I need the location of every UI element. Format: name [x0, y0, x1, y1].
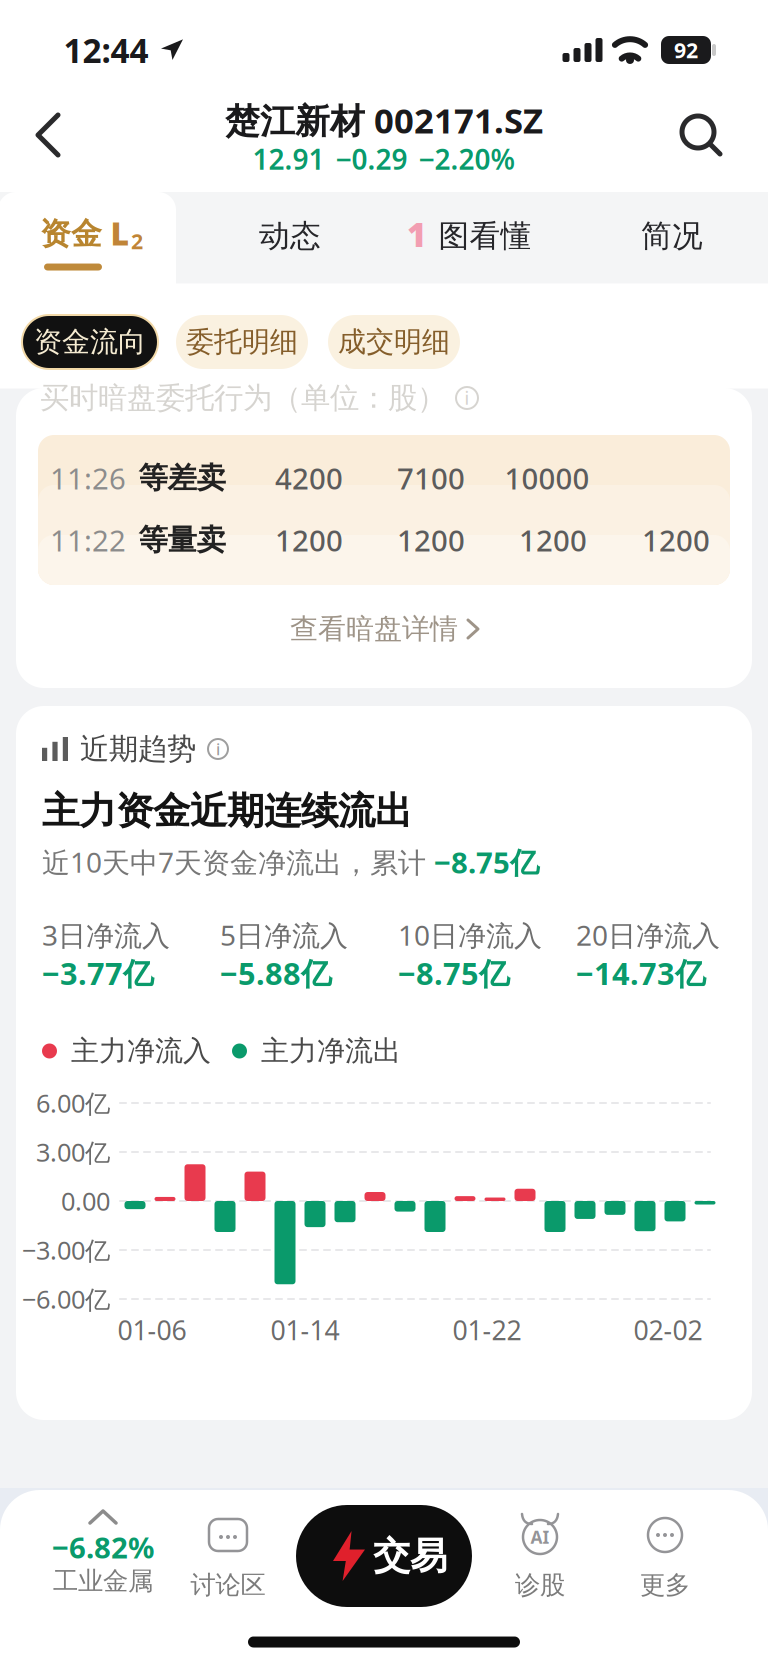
- staticText: 主力净流出: [261, 1034, 401, 1068]
- button[interactable]: Search: [682, 116, 722, 156]
- staticText: 01-14: [270, 1312, 339, 1348]
- button[interactable]: 资金: [0, 192, 178, 284]
- staticText: L: [110, 212, 129, 254]
- staticText: 主力资金近期连续流出: [42, 788, 412, 834]
- staticText: 02-02: [633, 1312, 702, 1348]
- staticText: 更多: [640, 1569, 690, 1600]
- staticText: 等量卖: [138, 522, 225, 558]
- staticText: 诊股: [515, 1569, 565, 1600]
- staticText: 4200: [275, 458, 343, 497]
- staticText: i: [216, 738, 220, 760]
- staticText: 2: [131, 227, 143, 255]
- staticText: −8.75亿: [434, 842, 539, 881]
- staticText: 资金: [40, 215, 102, 253]
- staticText: −6.00亿: [22, 1282, 110, 1316]
- staticText: −8.75亿: [398, 953, 510, 993]
- staticText: 01-06: [117, 1312, 186, 1348]
- staticText: AI: [530, 1525, 549, 1548]
- staticText: 图看懂: [438, 217, 531, 255]
- staticText: 11:22: [50, 520, 126, 559]
- staticText: 交易: [373, 1533, 447, 1579]
- staticText: 资金流向: [34, 325, 146, 359]
- staticText: 10000: [504, 458, 589, 497]
- button[interactable]: 查看暗盘详情: [290, 612, 478, 646]
- staticText: 动态: [259, 217, 321, 255]
- staticText: −6.82%: [52, 1527, 154, 1566]
- staticText: 12.91: [252, 140, 324, 178]
- staticText: 成交明细: [338, 325, 450, 359]
- staticText: 6.00亿: [36, 1086, 110, 1120]
- button[interactable]: 动态: [220, 190, 360, 282]
- staticText: −14.73亿: [576, 953, 706, 993]
- staticText: 等差卖: [138, 460, 225, 496]
- staticText: −3.00亿: [22, 1233, 110, 1267]
- staticText: 近期趋势: [80, 731, 196, 767]
- staticText: 11:26: [50, 458, 126, 497]
- staticText: −3.77亿: [42, 953, 154, 993]
- staticText: 12:44: [63, 28, 148, 72]
- staticText: 买时暗盘委托行为（单位：股）: [40, 380, 446, 416]
- button[interactable]: 交易: [296, 1505, 472, 1607]
- staticText: 20日净流入: [576, 916, 720, 954]
- staticText: 92: [674, 36, 698, 64]
- button[interactable]: 成交明细: [328, 315, 460, 369]
- staticText: 查看暗盘详情: [290, 612, 458, 646]
- staticText: 5日净流入: [220, 916, 348, 954]
- staticText: 简况: [641, 217, 703, 255]
- staticText: 楚江新材 002171.SZ: [225, 97, 543, 143]
- button[interactable]: Back: [38, 115, 58, 155]
- staticText: −2.20%: [418, 140, 515, 178]
- staticText: 1200: [519, 520, 587, 559]
- button[interactable]: 委托明细: [176, 315, 308, 369]
- staticText: 0.00: [61, 1184, 110, 1218]
- staticText: 1: [407, 212, 427, 256]
- staticText: 01-22: [452, 1312, 521, 1348]
- button[interactable]: 讨论区: [168, 1507, 288, 1599]
- button[interactable]: 简况: [602, 190, 742, 282]
- staticText: 7100: [397, 458, 465, 497]
- staticText: 委托明细: [186, 325, 298, 359]
- button[interactable]: 1: [395, 190, 545, 282]
- staticText: 讨论区: [190, 1569, 265, 1600]
- staticText: 10日净流入: [398, 916, 542, 954]
- staticText: 近10天中7天资金净流出，累计: [42, 843, 434, 881]
- button[interactable]: AI: [480, 1507, 600, 1599]
- staticText: 1200: [275, 520, 343, 559]
- staticText: 3.00亿: [36, 1135, 110, 1169]
- staticText: −5.88亿: [220, 953, 332, 993]
- staticText: 主力净流入: [71, 1034, 211, 1068]
- button[interactable]: 资金流向: [22, 315, 158, 369]
- staticText: 1200: [397, 520, 465, 559]
- staticText: i: [464, 386, 469, 409]
- button[interactable]: More: [605, 1507, 725, 1599]
- staticText: 1200: [642, 520, 710, 559]
- button[interactable]: −6.82%: [33, 1503, 173, 1595]
- staticText: 3日净流入: [42, 916, 170, 954]
- staticText: 工业金属: [53, 1565, 153, 1596]
- staticText: −0.29: [335, 140, 407, 178]
